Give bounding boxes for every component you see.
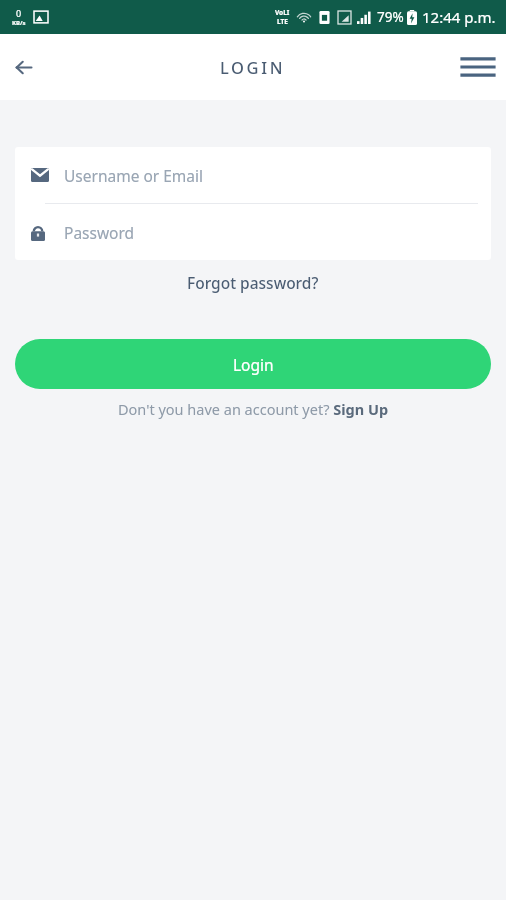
button[interactable]: Username or Email <box>15 147 491 203</box>
button[interactable]: Menu <box>458 47 498 87</box>
staticText: 0 <box>16 7 22 19</box>
staticText: LOGIN <box>220 56 286 78</box>
staticText: Forgot password? <box>187 272 319 293</box>
staticText: LTE <box>277 17 288 26</box>
staticText: Password <box>64 222 135 243</box>
staticText: KB/s <box>12 19 26 27</box>
staticText: Don't you have an account yet? Sign Up <box>118 399 389 419</box>
button[interactable]: Forgot password? <box>0 272 506 293</box>
button[interactable]: Back <box>6 50 40 84</box>
staticText: Login <box>233 354 274 375</box>
staticText: 12:44 p.m. <box>422 7 496 27</box>
button[interactable]: Password <box>15 204 491 260</box>
staticText: VoLI <box>275 8 290 17</box>
staticText: Username or Email <box>64 165 204 186</box>
staticText: 79% <box>377 8 404 26</box>
button[interactable]: Login <box>15 339 491 389</box>
button[interactable]: Don't you have an account yet? Sign Up <box>0 399 506 419</box>
